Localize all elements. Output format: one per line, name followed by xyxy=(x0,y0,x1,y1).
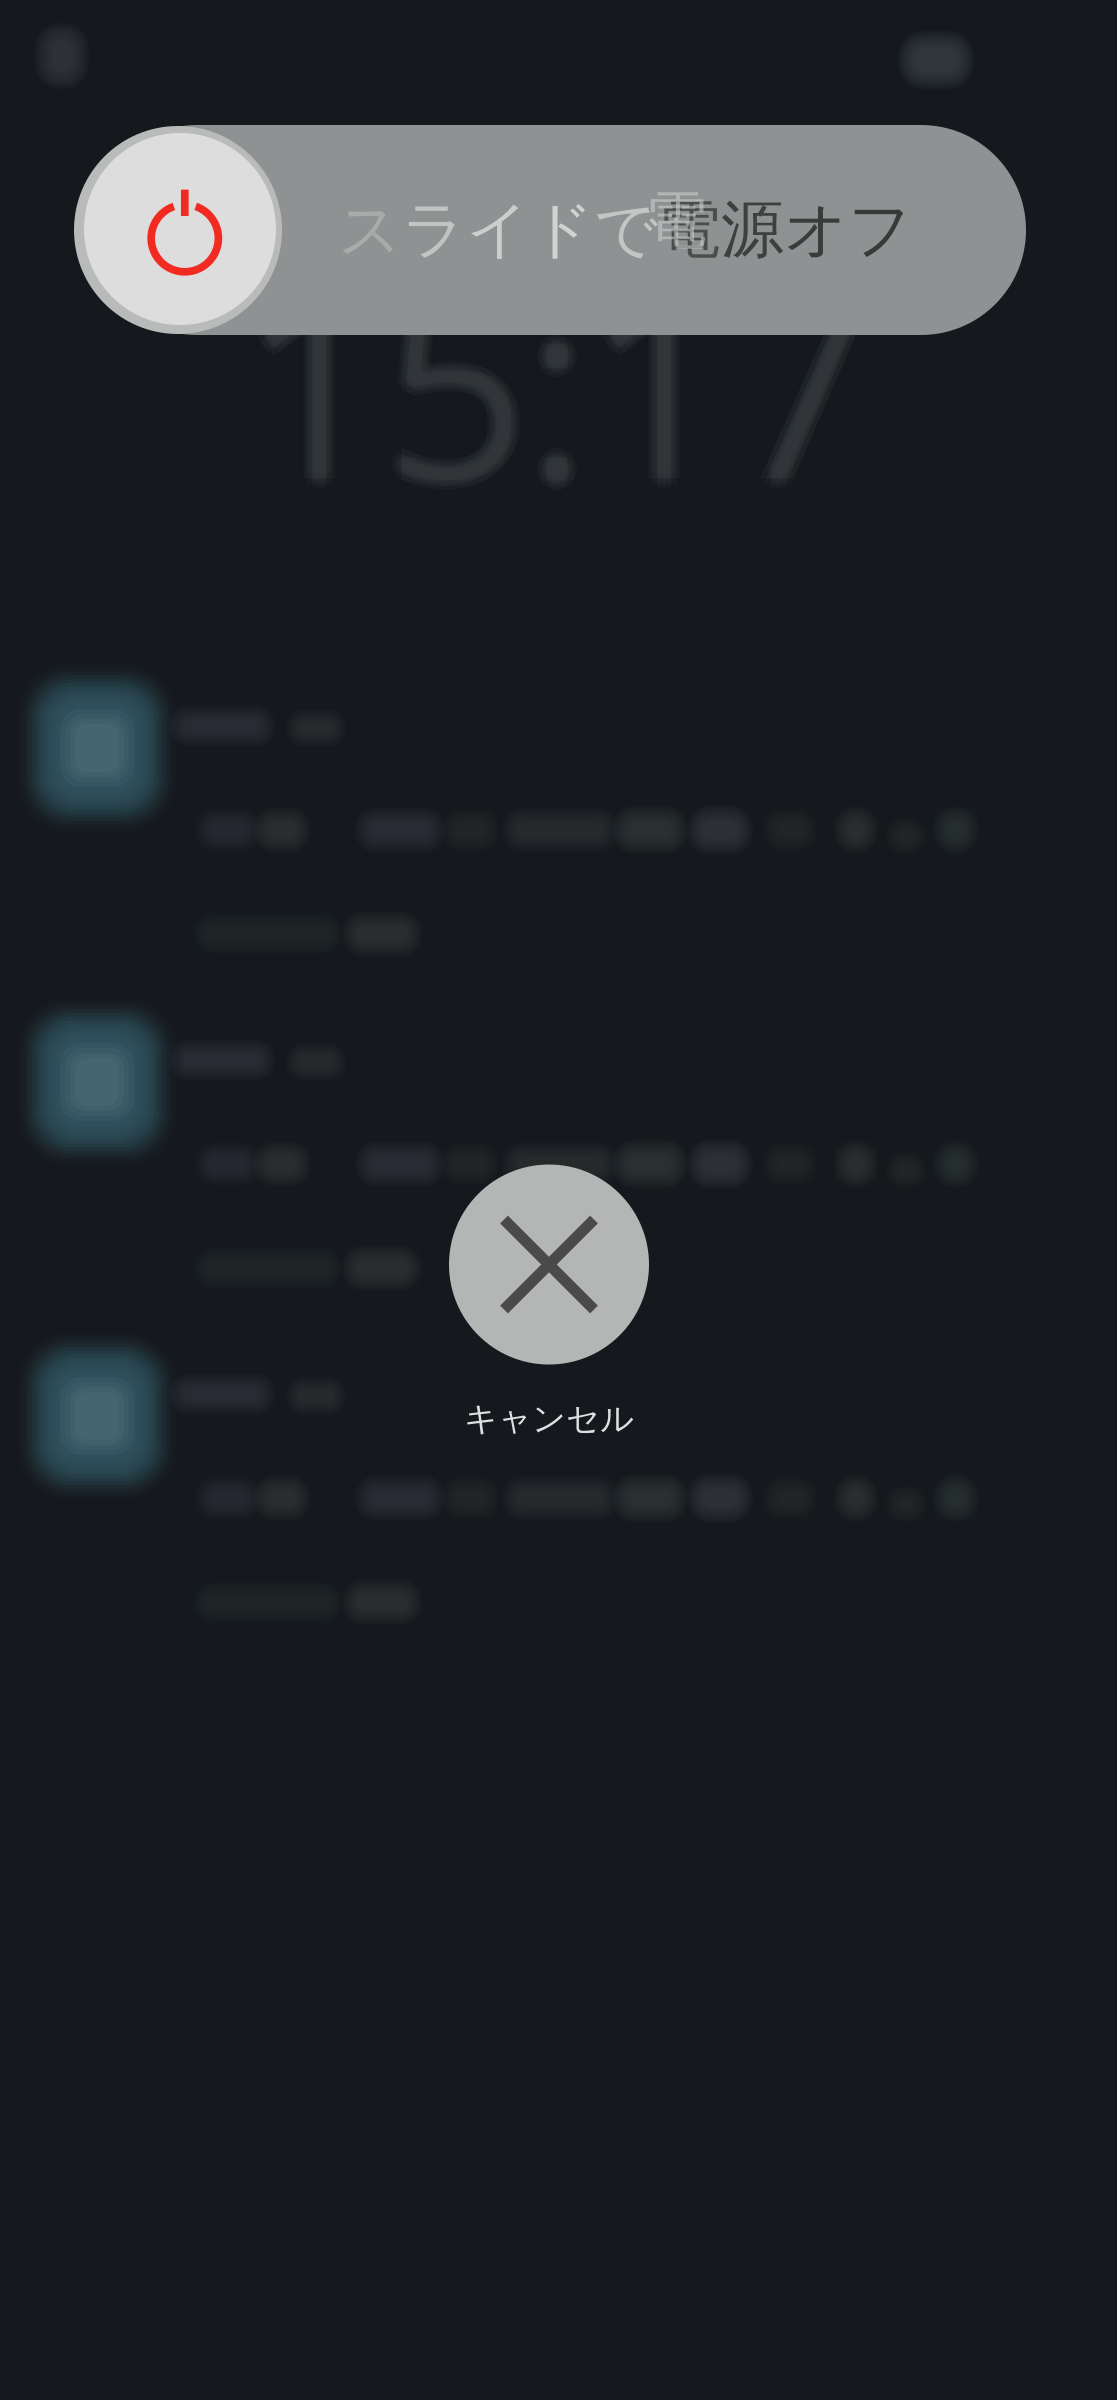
staticText: で xyxy=(594,191,658,268)
staticText: キャンセル xyxy=(464,1398,634,1439)
button[interactable]: キャンセル xyxy=(449,1164,649,1439)
staticText: 15:17 xyxy=(251,217,880,547)
staticText: 15:17 xyxy=(236,223,865,553)
staticText: オ xyxy=(784,191,848,268)
button[interactable]: ス xyxy=(92,125,1026,335)
staticText: ラ xyxy=(402,191,466,268)
staticText: 15:17 xyxy=(245,217,874,547)
staticText: 源 xyxy=(721,191,784,268)
staticText: 15:17 xyxy=(248,211,877,541)
staticText: 電 xyxy=(658,191,721,268)
staticText: ド xyxy=(530,191,594,268)
staticText: イ xyxy=(466,191,530,268)
staticText: 15:17 xyxy=(242,226,871,556)
staticText: 15:17 xyxy=(239,217,868,547)
staticText: 15:17 xyxy=(248,223,877,553)
staticText: 15:17 xyxy=(236,211,865,541)
staticText: 15:17 xyxy=(242,217,871,547)
staticText: 電 xyxy=(644,182,707,259)
staticText: 15:17 xyxy=(242,220,871,550)
staticText: フ xyxy=(848,191,912,268)
staticText: 15:17 xyxy=(233,217,862,547)
staticText: ス xyxy=(338,191,402,268)
staticText: 15:17 xyxy=(242,208,871,538)
staticText: 15:17 xyxy=(242,214,871,544)
